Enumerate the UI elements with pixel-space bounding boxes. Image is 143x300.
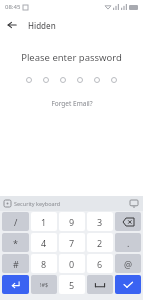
button[interactable]: * (2, 233, 29, 252)
staticText: 6 (97, 258, 103, 270)
button[interactable]: # (2, 254, 29, 273)
button[interactable]: 5 (59, 275, 85, 294)
staticText: Security keyboard (14, 200, 61, 207)
staticText: . (127, 237, 130, 249)
staticText: # (13, 258, 19, 270)
button[interactable]: Return (2, 275, 29, 294)
button[interactable]: 2 (87, 233, 113, 252)
button[interactable]: 8 (31, 254, 57, 273)
button[interactable]: Backspace (115, 212, 141, 231)
button[interactable]: . (115, 233, 141, 252)
staticText: 08:45 (5, 3, 21, 11)
staticText: 0 (69, 258, 75, 270)
staticText: 1 (41, 216, 47, 228)
button[interactable]: 0 (59, 254, 85, 273)
staticText: * (13, 237, 18, 249)
button[interactable]: 6 (87, 254, 113, 273)
button[interactable]: 3 (87, 212, 113, 231)
staticText: 3 (97, 216, 103, 228)
button[interactable]: !#$ (31, 275, 57, 294)
button[interactable]: Hide keyboard (128, 198, 139, 209)
staticText: 9 (69, 216, 75, 228)
button[interactable]: 4 (31, 233, 57, 252)
button[interactable]: Space (87, 275, 113, 294)
button[interactable]: Forget Email? (47, 95, 97, 112)
button[interactable]: Confirm (115, 275, 141, 294)
staticText: 5 (69, 279, 75, 291)
button[interactable]: @ (115, 254, 141, 273)
staticText: @ (124, 258, 133, 270)
staticText: Please enter password (0, 51, 143, 64)
button[interactable]: 9 (59, 212, 85, 231)
staticText: Hidden (28, 20, 56, 31)
staticText: 7 (69, 237, 75, 249)
button[interactable]: 7 (59, 233, 85, 252)
staticText: 4 (41, 237, 47, 249)
staticText: 8 (41, 258, 47, 270)
staticText: 2 (97, 237, 103, 249)
button[interactable]: / (2, 212, 29, 231)
staticText: !#$ (40, 281, 49, 288)
button[interactable]: Back (0, 13, 24, 37)
button[interactable]: 1 (31, 212, 57, 231)
staticText: / (14, 216, 18, 228)
